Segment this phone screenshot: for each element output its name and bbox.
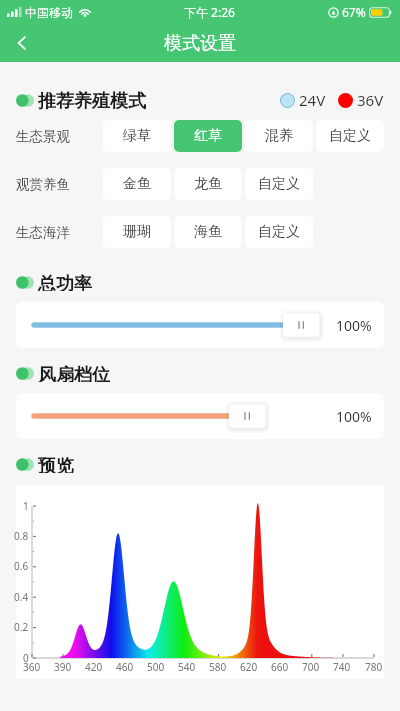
staticText: 0.2	[14, 620, 29, 634]
button[interactable]: Slider	[16, 393, 384, 439]
staticText: 金鱼	[123, 175, 151, 193]
staticText: 660	[271, 660, 289, 674]
button[interactable]: 混养	[245, 120, 313, 152]
staticText: 100%	[336, 407, 372, 426]
staticText: 生态海洋	[16, 224, 70, 241]
staticText: 0.8	[14, 529, 29, 543]
staticText: 580	[209, 660, 227, 674]
staticText: 总功率	[38, 273, 92, 291]
staticText: 100%	[336, 316, 372, 335]
button[interactable]: 自定义	[245, 216, 313, 248]
button[interactable]: 龙鱼	[174, 168, 242, 200]
staticText: 780	[365, 660, 383, 674]
button[interactable]: Slider	[16, 302, 384, 348]
button[interactable]: 珊瑚	[103, 216, 171, 248]
staticText: 460	[116, 660, 134, 674]
staticText: 540	[178, 660, 196, 674]
staticText: 生态景观	[16, 128, 70, 145]
staticText: 700	[302, 660, 320, 674]
staticText: 0	[23, 651, 29, 665]
staticText: 67%	[342, 4, 366, 20]
staticText: 24V	[299, 90, 326, 110]
button[interactable]: Back	[0, 24, 44, 62]
button[interactable]: 绿草	[103, 120, 171, 152]
staticText: 36V	[357, 90, 384, 110]
staticText: 420	[85, 660, 103, 674]
staticText: 自定义	[258, 175, 300, 193]
staticText: 自定义	[329, 127, 371, 145]
staticText: 推荐养殖模式	[38, 90, 146, 110]
staticText: 0.4	[14, 590, 29, 604]
staticText: 龙鱼	[194, 175, 222, 193]
staticText: 0.6	[14, 559, 29, 573]
staticText: 620	[240, 660, 258, 674]
staticText: 海鱼	[194, 223, 222, 241]
staticText: 740	[333, 660, 351, 674]
staticText: 模式设置	[164, 32, 236, 55]
button[interactable]: 金鱼	[103, 168, 171, 200]
staticText: 下午 2:26	[184, 4, 235, 20]
staticText: 混养	[265, 127, 293, 145]
staticText: 390	[54, 660, 72, 674]
staticText: 自定义	[258, 223, 300, 241]
staticText: 观赏养鱼	[16, 176, 70, 193]
staticText: 绿草	[123, 127, 151, 145]
staticText: 预览	[38, 455, 74, 473]
staticText: 1	[23, 499, 29, 513]
staticText: 红草	[194, 127, 222, 145]
button[interactable]: 自定义	[316, 120, 384, 152]
staticText: 中国移动	[25, 5, 73, 20]
button[interactable]: 海鱼	[174, 216, 242, 248]
button[interactable]: 红草	[174, 120, 242, 152]
staticText: 360	[23, 660, 41, 674]
staticText: 珊瑚	[123, 223, 151, 241]
staticText: 风扇档位	[38, 364, 110, 382]
button[interactable]: 自定义	[245, 168, 313, 200]
staticText: 500	[147, 660, 165, 674]
